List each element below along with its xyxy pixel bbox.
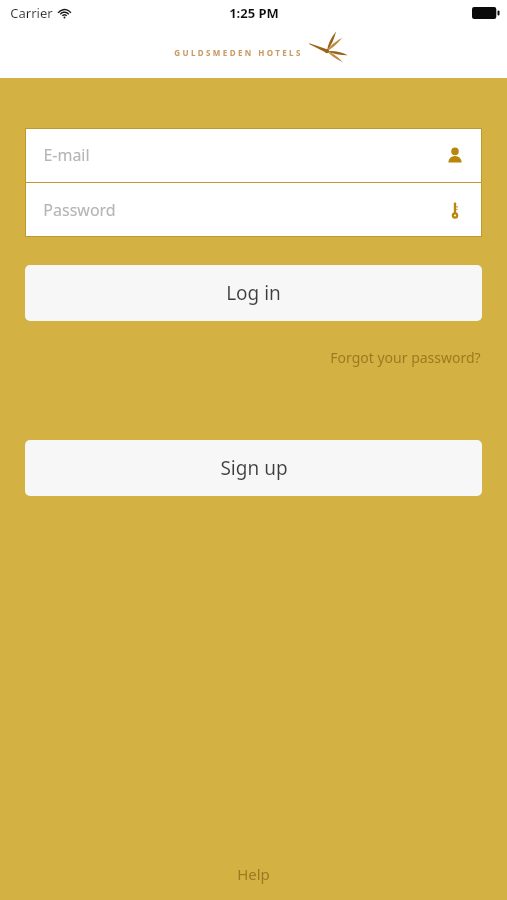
staticText: Log in <box>226 280 281 306</box>
button[interactable]: Password field <box>25 183 482 237</box>
staticText: Help <box>237 864 270 884</box>
button[interactable]: Sign up <box>25 440 482 496</box>
button[interactable]: Email field <box>25 128 482 182</box>
button[interactable]: Help <box>219 858 288 890</box>
button[interactable]: Log in <box>25 265 482 321</box>
staticText: Carrier <box>10 4 53 22</box>
staticText: GULDSMEDEN HOTELS <box>174 47 303 58</box>
staticText: 1:25 PM <box>229 4 279 22</box>
staticText: E-mail <box>43 144 90 166</box>
staticText: Password <box>43 199 116 221</box>
button[interactable]: Forgot your password? <box>328 345 483 370</box>
staticText: Forgot your password? <box>330 348 481 367</box>
staticText: Sign up <box>220 455 288 481</box>
